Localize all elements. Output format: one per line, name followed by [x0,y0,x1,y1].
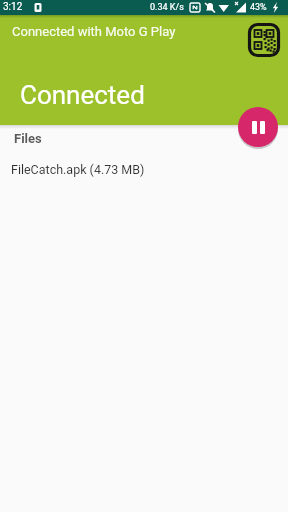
staticText: Files [14,131,42,146]
button[interactable]: FileCatch.apk (4.73 MB) [0,153,288,183]
staticText: Connected [20,80,145,110]
button[interactable] [248,23,280,58]
staticText: 43% [250,2,267,13]
staticText: Connected with Moto G Play [12,24,176,39]
staticText: FileCatch.apk (4.73 MB) [11,162,145,177]
staticText: 0.34 K/s [150,2,184,13]
staticText: 3:12 [3,1,23,13]
button[interactable] [238,107,278,147]
